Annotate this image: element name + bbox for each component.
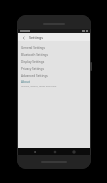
staticText: General Settings (21, 46, 45, 50)
staticText: Bluetooth Settings (21, 53, 48, 57)
staticText: About (21, 80, 30, 84)
staticText: Display Settings (21, 60, 45, 64)
button[interactable]: About (21, 79, 87, 88)
staticText: Advanced Settings (21, 74, 48, 78)
button[interactable]: Advanced Settings (21, 72, 87, 79)
button[interactable]: General Settings (21, 44, 87, 51)
button[interactable]: Privacy Settings (21, 65, 87, 72)
button[interactable]: Display Settings (21, 58, 87, 65)
staticText: Privacy Settings (21, 67, 44, 71)
button[interactable]: Bluetooth Settings (21, 51, 87, 58)
staticText: Version, license, terms and more (21, 85, 57, 88)
staticText: Settings (29, 35, 43, 40)
button[interactable]: Home (52, 149, 57, 154)
button[interactable]: Recent apps (71, 149, 76, 154)
button[interactable]: Navigate up (20, 34, 27, 41)
button[interactable]: Back (32, 149, 37, 154)
